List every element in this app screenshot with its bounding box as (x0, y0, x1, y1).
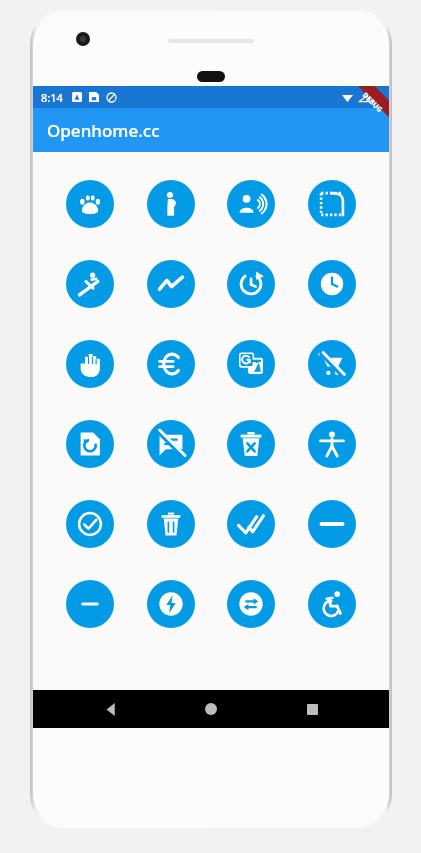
button[interactable]: Back (88, 690, 134, 728)
staticText: Openhome.cc (47, 119, 160, 142)
staticText: DEBUG (360, 91, 385, 115)
button[interactable]: Translate (227, 340, 275, 388)
button[interactable]: Offline bolt (147, 580, 195, 628)
button[interactable]: Pregnant (147, 180, 195, 228)
button[interactable]: Home (188, 690, 234, 728)
button[interactable]: Update (227, 260, 275, 308)
button[interactable]: Euro (147, 340, 195, 388)
button[interactable]: Rowing (66, 260, 114, 308)
button[interactable]: Done all (227, 500, 275, 548)
button[interactable]: Pan tool (66, 340, 114, 388)
button[interactable]: Clock (308, 260, 356, 308)
button[interactable]: Remove (308, 500, 356, 548)
button[interactable]: Recents (289, 690, 335, 728)
button[interactable]: Record voice over (227, 180, 275, 228)
staticText: 8:14 (41, 90, 63, 105)
button[interactable]: Restore page (66, 420, 114, 468)
button[interactable]: Notes off (147, 420, 195, 468)
button[interactable]: Delete forever (227, 420, 275, 468)
button[interactable]: Trending (147, 260, 195, 308)
button[interactable]: Openhome.cc (33, 108, 389, 152)
button[interactable]: Delete (147, 500, 195, 548)
button[interactable]: Rounded corner (308, 180, 356, 228)
button[interactable]: Accessibility (308, 420, 356, 468)
button[interactable]: Swap (227, 580, 275, 628)
button[interactable]: Pets (66, 180, 114, 228)
button[interactable]: Check circle (66, 500, 114, 548)
button[interactable]: Remove cart (308, 340, 356, 388)
button[interactable]: Accessible (308, 580, 356, 628)
button[interactable]: Minus (66, 580, 114, 628)
